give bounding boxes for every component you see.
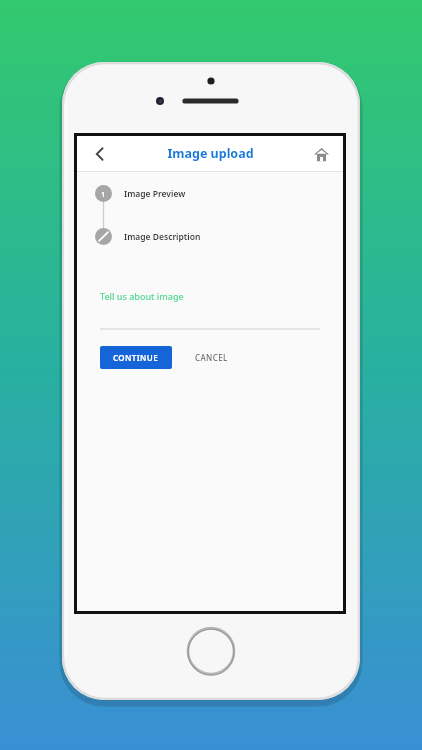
staticText: CANCEL (195, 352, 228, 363)
staticText: Tell us about image (100, 290, 184, 302)
staticText: Image upload (167, 145, 254, 162)
staticText: CONTINUE (113, 352, 159, 363)
button[interactable]: Home (308, 141, 334, 167)
button[interactable]: CANCEL (186, 346, 237, 369)
staticText: Image Description (124, 231, 201, 243)
staticText: 1 (101, 189, 106, 199)
button[interactable]: Back (87, 141, 113, 167)
staticText: Image Preview (124, 188, 186, 200)
button[interactable]: CONTINUE (100, 346, 172, 369)
